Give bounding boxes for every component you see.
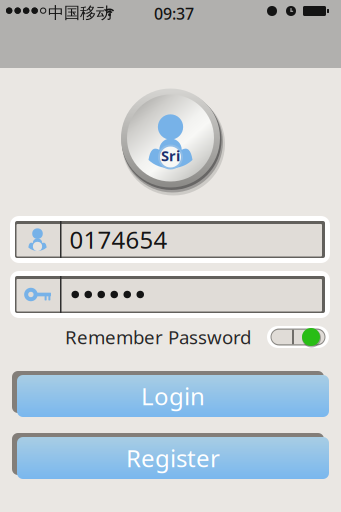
button[interactable]: Remember Password xyxy=(267,326,329,348)
button[interactable]: Login xyxy=(13,372,333,420)
staticText: Remember Password xyxy=(65,325,251,349)
staticText: 中国移动 xyxy=(48,3,112,23)
staticText: Register xyxy=(126,442,220,474)
staticText: 0174654 xyxy=(69,224,167,255)
staticText: 09:37 xyxy=(154,3,194,24)
staticText: Sri xyxy=(161,146,180,165)
button[interactable]: Register xyxy=(13,434,333,482)
button[interactable]: Profile photo xyxy=(115,83,225,193)
staticText: Login xyxy=(141,380,205,412)
